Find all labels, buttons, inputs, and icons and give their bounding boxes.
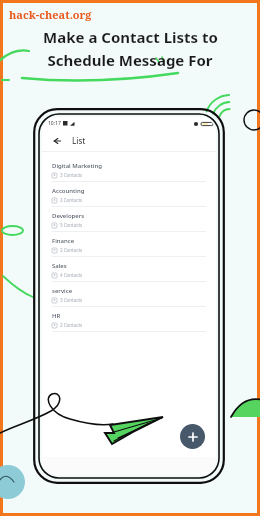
staticText: 2 Contacts [60, 247, 83, 253]
button[interactable]: Digital Marketing [42, 159, 216, 184]
button[interactable]: Add new list [180, 424, 205, 449]
staticText: 3 Contacts [60, 172, 83, 178]
button[interactable]: service [42, 284, 216, 309]
staticText: Digital Marketing [52, 162, 102, 170]
staticText: Schedule Message For [47, 50, 213, 70]
staticText: 5 Contacts [60, 222, 83, 228]
staticText: HR [52, 312, 61, 320]
button[interactable]: Sales [42, 259, 216, 284]
button[interactable]: Accounting [42, 184, 216, 209]
staticText: Make a Contact Lists to [43, 27, 218, 47]
button[interactable]: Developers [42, 209, 216, 234]
button[interactable]: Finance [42, 234, 216, 259]
staticText: hack-cheat.org [9, 7, 92, 22]
staticText: Developers [52, 212, 85, 220]
staticText: 2 Contacts [60, 197, 83, 203]
staticText: 10:17 [48, 120, 61, 127]
staticText: Accounting [52, 187, 85, 195]
staticText: Sales [52, 262, 67, 270]
staticText: 4 Contacts [60, 272, 83, 278]
staticText: service [52, 287, 73, 295]
button[interactable]: Back [50, 134, 63, 147]
button[interactable]: HR [42, 309, 216, 334]
staticText: List [72, 135, 86, 146]
staticText: Finance [52, 237, 75, 245]
staticText: 2 Contacts [60, 322, 83, 328]
staticText: 3 Contacts [60, 297, 83, 303]
